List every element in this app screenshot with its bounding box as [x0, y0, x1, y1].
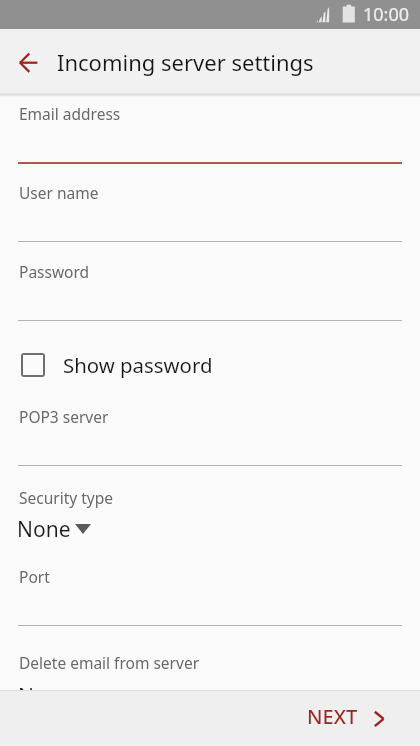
- staticText: POP3 server: [19, 406, 109, 427]
- button[interactable]: [0, 560, 420, 631]
- button[interactable]: None: [12, 678, 100, 690]
- staticText: Delete email from server: [19, 652, 200, 673]
- button[interactable]: NEXT: [290, 690, 402, 746]
- staticText: Show password: [63, 351, 213, 379]
- button[interactable]: [0, 400, 420, 471]
- button[interactable]: [0, 97, 420, 168]
- button[interactable]: [0, 176, 420, 247]
- staticText: None: [18, 682, 72, 694]
- staticText: Port: [19, 566, 50, 587]
- staticText: Security type: [19, 487, 113, 508]
- staticText: Password: [19, 261, 90, 282]
- staticText: Email address: [19, 103, 121, 124]
- staticText: User name: [19, 182, 99, 203]
- button[interactable]: [0, 255, 420, 326]
- button[interactable]: Show password: [0, 342, 420, 388]
- button[interactable]: Navigate up: [4, 38, 52, 86]
- button[interactable]: None: [12, 511, 100, 545]
- staticText: None: [17, 515, 71, 544]
- staticText: Incoming server settings: [57, 47, 314, 77]
- staticText: NEXT: [307, 703, 358, 730]
- staticText: 10:00: [363, 2, 410, 27]
